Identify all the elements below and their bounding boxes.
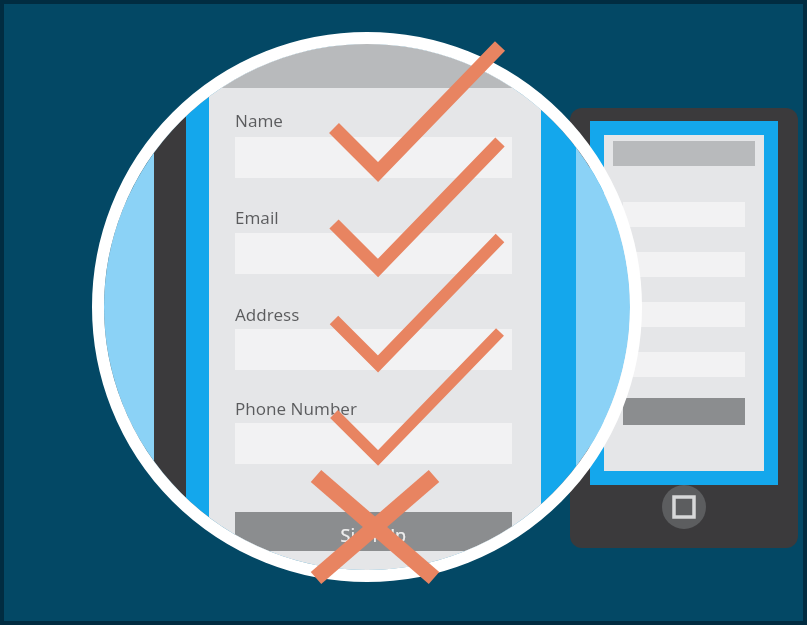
button[interactable]: Sign up form validation illustration (0, 0, 807, 625)
